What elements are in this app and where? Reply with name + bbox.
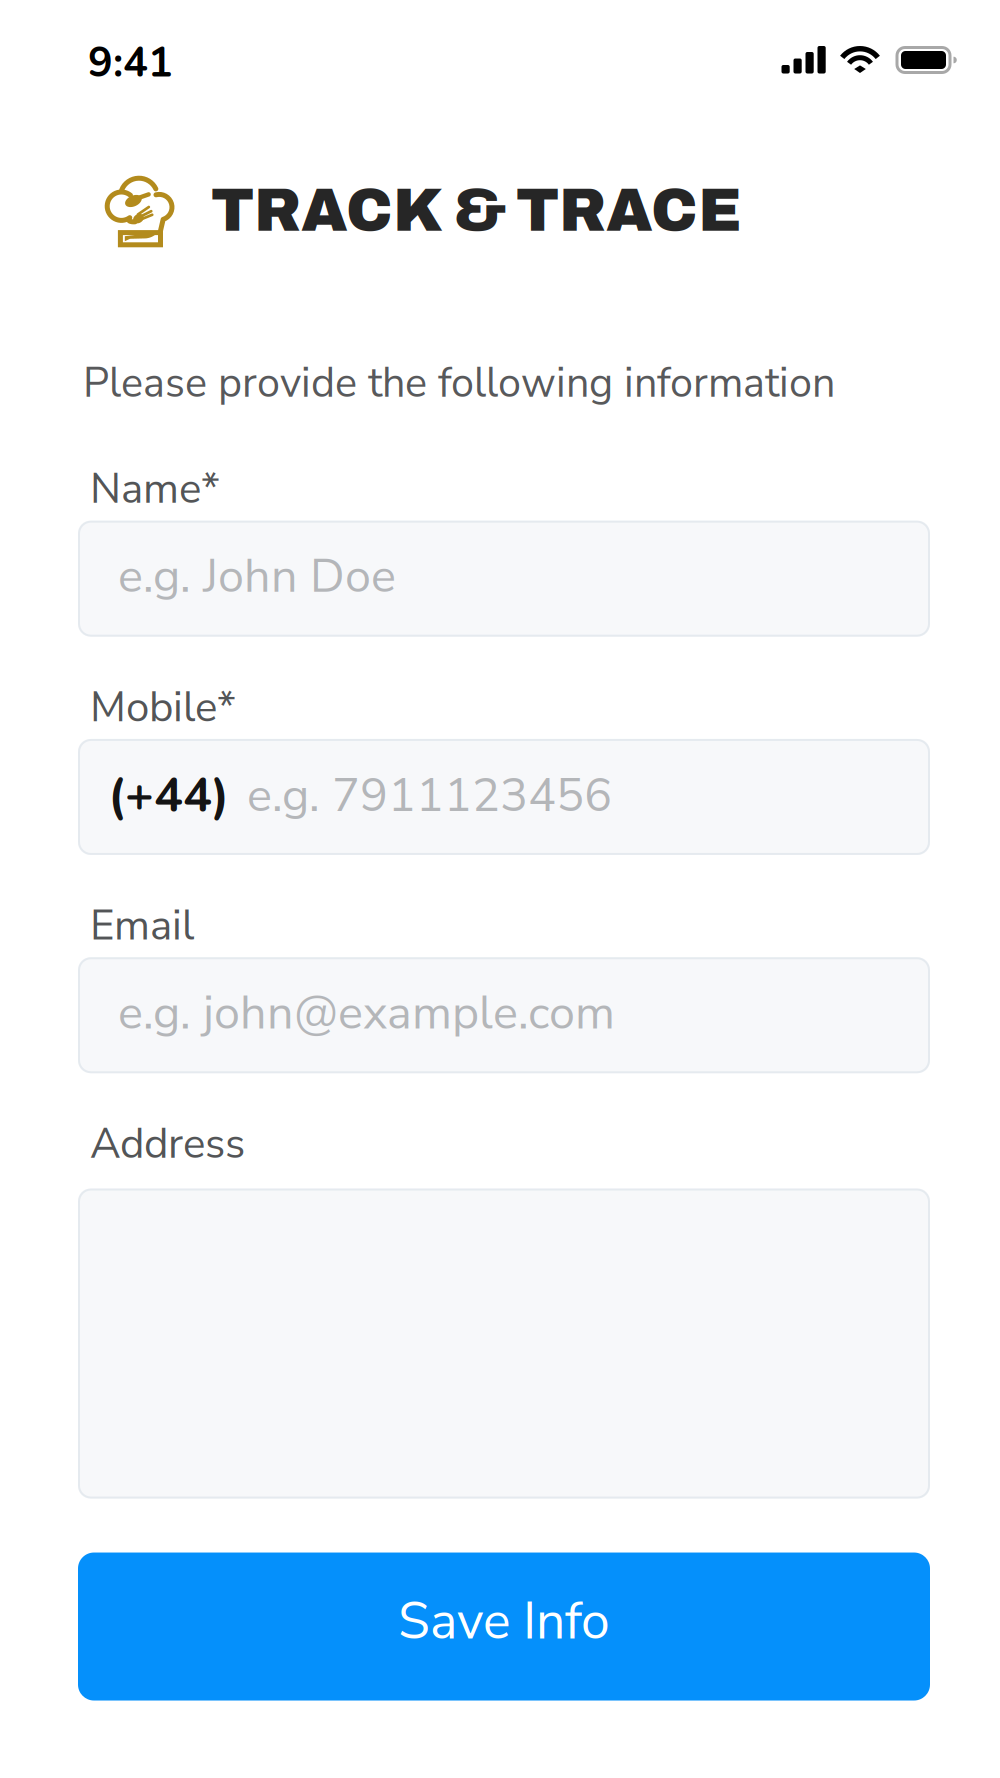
- button[interactable]: Save Info: [78, 1552, 930, 1700]
- staticText: Please provide the following information: [83, 355, 835, 411]
- staticText: 9:41: [88, 35, 173, 91]
- button[interactable]: Mobile*: [78, 739, 930, 855]
- staticText: Address: [90, 1115, 245, 1172]
- staticText: TRACK & TRACE: [211, 178, 741, 243]
- button[interactable]: Email: [78, 957, 930, 1073]
- staticText: Save Info: [398, 1586, 610, 1657]
- staticText: Email: [90, 897, 194, 954]
- staticText: Mobile*: [90, 679, 236, 736]
- staticText: Name*: [90, 460, 220, 518]
- staticText: (+44): [108, 763, 229, 828]
- staticText: e.g. john@example.com: [118, 981, 615, 1045]
- staticText: e.g. 7911123456: [247, 764, 612, 828]
- staticText: e.g. John Doe: [118, 545, 396, 608]
- button[interactable]: Name*: [78, 521, 930, 637]
